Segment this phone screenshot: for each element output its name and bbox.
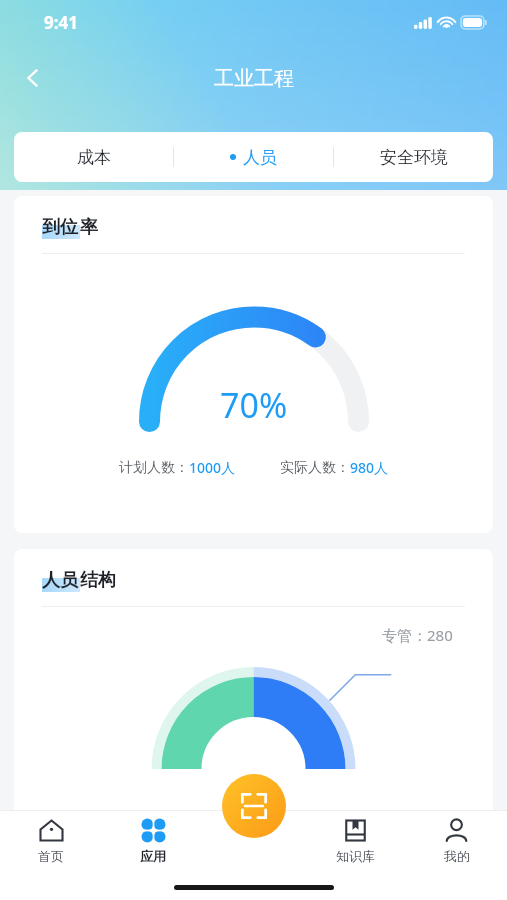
staticText: 9:41	[44, 11, 78, 34]
button[interactable]: Scan	[222, 774, 286, 838]
staticText: 知识库	[336, 848, 375, 864]
staticText: 安全环境	[380, 147, 448, 168]
button[interactable]: Back	[10, 55, 56, 101]
button[interactable]: 知识库	[305, 810, 406, 864]
staticText: 工业工程	[214, 66, 294, 91]
staticText: 专管：280	[382, 625, 453, 645]
staticText: 人员	[42, 569, 78, 592]
staticText: 980人	[350, 458, 389, 477]
staticText: 70%	[220, 382, 288, 428]
staticText: 率	[80, 216, 98, 239]
staticText: 我的	[444, 848, 470, 864]
button[interactable]: 人员	[174, 132, 333, 182]
staticText: 首页	[38, 848, 64, 864]
button[interactable]: 成本	[14, 132, 173, 182]
button[interactable]: 我的	[406, 810, 507, 864]
staticText: 结构	[80, 569, 116, 592]
staticText: 1000人	[189, 458, 236, 477]
staticText: 实际人数：	[280, 459, 350, 477]
staticText: 应用	[140, 848, 166, 864]
button[interactable]: 首页	[0, 810, 102, 864]
staticText: 人员	[243, 147, 277, 168]
staticText: 计划人数：	[119, 459, 189, 477]
button[interactable]: 应用	[102, 810, 204, 864]
button[interactable]: 安全环境	[334, 132, 493, 182]
staticText: 成本	[77, 147, 111, 168]
staticText: 到位	[42, 216, 78, 239]
